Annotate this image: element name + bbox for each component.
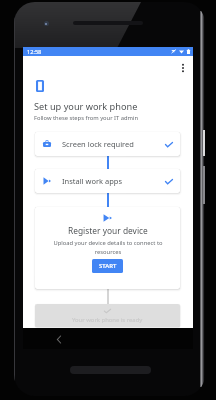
staticText: 12:58 — [27, 48, 42, 56]
button[interactable]: Your work phone is ready — [35, 304, 180, 327]
staticText: Register your device — [68, 225, 148, 236]
staticText: Install work apps — [62, 176, 123, 186]
button[interactable]: Register your device — [35, 207, 180, 289]
staticText: Follow these steps from your IT admin — [34, 114, 139, 122]
button[interactable]: START — [92, 259, 123, 273]
staticText: START — [99, 262, 117, 270]
button[interactable]: Screen lock required — [35, 132, 180, 156]
button[interactable]: Back — [51, 331, 67, 347]
button[interactable]: More options — [175, 60, 191, 76]
button[interactable]: Install work apps — [35, 169, 180, 193]
staticText: Set up your work phone — [34, 100, 138, 113]
staticText: Screen lock required — [62, 139, 134, 149]
staticText: Your work phone is ready — [72, 316, 143, 324]
staticText: Upload your device details to connect to… — [53, 239, 163, 255]
